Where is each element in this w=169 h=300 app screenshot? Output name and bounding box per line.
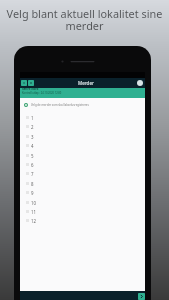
- staticText: 1: [31, 115, 34, 121]
- button[interactable]: 8: [20, 179, 145, 188]
- staticText: Kontroll utløp : 24.10.2020 12:00: [22, 91, 62, 95]
- button[interactable]: 3: [20, 132, 145, 141]
- staticText: Sætre Nord: [22, 87, 39, 91]
- staticText: merder: [0, 18, 169, 33]
- staticText: 10: [31, 200, 37, 206]
- staticText: 9: [31, 190, 34, 196]
- staticText: Merder: [78, 80, 94, 86]
- staticText: Velg blant aktuell lokalitet sine: [0, 6, 169, 21]
- staticText: 8: [31, 181, 34, 187]
- button[interactable]: 2: [20, 122, 145, 131]
- button[interactable]: 1: [20, 113, 145, 122]
- button[interactable]: 12: [20, 216, 145, 225]
- button[interactable]: Bruker: [137, 80, 143, 86]
- button[interactable]: Tilbake: [21, 80, 27, 86]
- staticText: 2: [31, 124, 34, 130]
- button[interactable]: 5: [20, 151, 145, 160]
- staticText: 4: [31, 143, 34, 149]
- button[interactable]: Hjem: [28, 80, 34, 86]
- button[interactable]: 4: [20, 141, 145, 150]
- button[interactable]: Neste: [138, 293, 145, 300]
- staticText: 3: [31, 134, 34, 140]
- button[interactable]: 6: [20, 160, 145, 169]
- button[interactable]: 9: [20, 188, 145, 197]
- button[interactable]: 11: [20, 207, 145, 216]
- staticText: Velg de merder som skal lakselusregistre…: [31, 103, 89, 107]
- staticText: 6: [31, 162, 34, 168]
- staticText: 12: [31, 218, 37, 224]
- staticText: 5: [31, 153, 34, 159]
- button[interactable]: 7: [20, 169, 145, 178]
- staticText: 7: [31, 171, 34, 177]
- staticText: 11: [31, 209, 37, 215]
- button[interactable]: 10: [20, 198, 145, 207]
